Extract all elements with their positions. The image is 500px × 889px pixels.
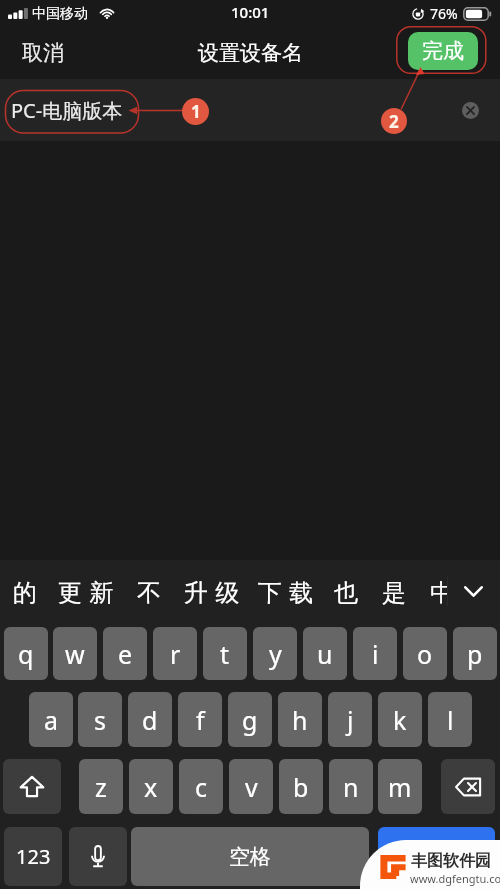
button[interactable]: p [453, 627, 497, 680]
button[interactable]: t [203, 627, 247, 680]
staticText: 的 [13, 578, 37, 608]
staticText: 换行 [416, 844, 458, 870]
button[interactable]: 不 [137, 578, 161, 608]
button[interactable]: u [303, 627, 347, 680]
staticText: a [44, 703, 59, 737]
button[interactable]: d [128, 692, 172, 747]
button[interactable]: x [129, 759, 173, 814]
button[interactable]: k [378, 692, 422, 747]
staticText: v [245, 770, 258, 804]
button[interactable]: Hide keyboard [452, 573, 494, 609]
staticText: 10:01 [231, 2, 270, 22]
staticText: 中国移动 [32, 5, 88, 23]
staticText: g [242, 703, 258, 737]
staticText: 2 [389, 110, 399, 133]
staticText: www.dgfengtu.com [410, 871, 500, 886]
button[interactable]: z [79, 759, 123, 814]
staticText: 设置设备名 [198, 40, 303, 66]
staticText: k [393, 703, 407, 737]
staticText: h [292, 703, 308, 737]
staticText: 1 [191, 100, 201, 123]
button[interactable]: Voice input [69, 827, 127, 886]
staticText: j [347, 703, 354, 737]
button[interactable]: h [278, 692, 322, 747]
button[interactable]: 也 [334, 578, 358, 608]
staticText: 不 [137, 578, 161, 608]
button[interactable]: 换行 [378, 827, 495, 886]
staticText: s [94, 703, 106, 737]
button[interactable]: m [378, 759, 422, 814]
button[interactable]: o [403, 627, 447, 680]
button[interactable]: 空格 [131, 827, 369, 886]
button[interactable]: 升级 [180, 578, 243, 608]
staticText: d [142, 703, 158, 737]
staticText: 123 [16, 843, 51, 870]
staticText: 取消 [22, 40, 64, 66]
button[interactable]: n [329, 759, 373, 814]
staticText: t [220, 637, 230, 671]
staticText: m [388, 770, 412, 804]
staticText: n [343, 770, 359, 804]
button[interactable]: Clear text [458, 98, 482, 122]
staticText: PC-电脑版本 [11, 97, 123, 124]
button[interactable]: g [228, 692, 272, 747]
staticText: b [293, 770, 309, 804]
staticText: 中 [430, 578, 447, 608]
button[interactable]: Backspace [441, 759, 495, 814]
button[interactable]: y [253, 627, 297, 680]
staticText: x [144, 770, 158, 804]
button[interactable]: l [428, 692, 472, 747]
button[interactable]: w [53, 627, 97, 680]
staticText: 升级 [180, 578, 243, 608]
button[interactable]: i [353, 627, 397, 680]
staticText: c [195, 770, 208, 804]
button[interactable]: s [78, 692, 122, 747]
staticText: 下载 [254, 578, 317, 608]
staticText: 丰图软件园 [411, 851, 491, 871]
button[interactable]: b [279, 759, 323, 814]
staticText: 是 [382, 578, 406, 608]
button[interactable]: a [29, 692, 73, 747]
button[interactable]: 取消 [22, 40, 64, 66]
staticText: 空格 [229, 844, 271, 870]
staticText: 完成 [422, 38, 464, 64]
button[interactable]: 下载 [254, 578, 317, 608]
staticText: r [170, 637, 181, 671]
staticText: 也 [334, 578, 358, 608]
staticText: f [196, 703, 205, 737]
button[interactable]: v [229, 759, 273, 814]
button[interactable]: j [328, 692, 372, 747]
staticText: i [372, 637, 379, 671]
staticText: o [417, 637, 433, 671]
button[interactable]: 123 [4, 827, 62, 886]
staticText: u [317, 637, 333, 671]
button[interactable]: q [4, 627, 48, 680]
button[interactable]: 完成 [408, 32, 478, 70]
staticText: 更新 [54, 578, 117, 608]
button[interactable]: 是 [382, 578, 406, 608]
button[interactable]: 更新 [54, 578, 117, 608]
staticText: w [65, 637, 85, 671]
button[interactable]: e [103, 627, 147, 680]
button[interactable]: 的 [13, 578, 37, 608]
button[interactable]: r [153, 627, 197, 680]
button[interactable]: Shift [3, 759, 61, 814]
staticText: y [269, 637, 282, 671]
staticText: z [95, 770, 107, 804]
staticText: q [18, 637, 34, 671]
button[interactable]: 中 [430, 578, 447, 609]
button[interactable]: c [179, 759, 223, 814]
staticText: e [118, 637, 133, 671]
staticText: l [447, 703, 454, 737]
button[interactable]: f [178, 692, 222, 747]
staticText: p [467, 637, 483, 671]
staticText: 76% [430, 4, 458, 23]
